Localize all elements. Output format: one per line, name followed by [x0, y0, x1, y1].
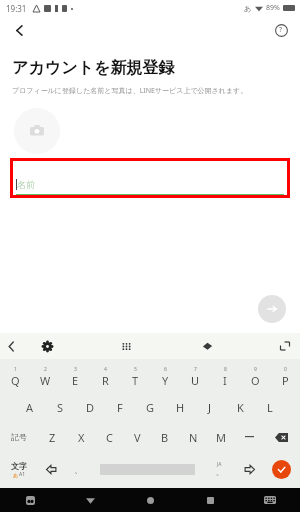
button[interactable]: 文字 — [0, 452, 38, 486]
staticText: J — [208, 400, 212, 415]
staticText: 1 — [14, 366, 17, 373]
staticText: あ — [13, 472, 19, 478]
staticText: 、 — [74, 464, 83, 475]
button[interactable]: D — [75, 392, 105, 422]
staticText: ー — [244, 430, 255, 444]
staticText: 。 — [216, 468, 223, 477]
button[interactable]: Back — [2, 337, 20, 355]
staticText: V — [134, 430, 141, 445]
staticText: N — [189, 430, 198, 445]
staticText: R — [102, 373, 109, 388]
button[interactable]: Assistant — [0, 488, 60, 512]
button[interactable]: Next — [258, 295, 286, 323]
staticText: ? — [279, 25, 283, 35]
staticText: 8 — [224, 366, 227, 373]
button[interactable]: 4 — [90, 362, 120, 392]
staticText: F — [117, 400, 123, 415]
button[interactable]: Settings — [38, 337, 56, 355]
button[interactable]: K — [225, 392, 255, 422]
staticText: W — [40, 373, 51, 388]
button[interactable]: Back — [4, 16, 34, 44]
button[interactable]: A — [15, 392, 45, 422]
staticText: JA — [217, 461, 222, 468]
button[interactable]: Back — [60, 488, 120, 512]
button[interactable]: Confirm — [263, 452, 300, 486]
staticText: 5 — [134, 366, 137, 373]
button[interactable]: Keyboard — [240, 488, 300, 512]
button[interactable]: 3 — [60, 362, 90, 392]
button[interactable]: ー — [235, 422, 263, 452]
button[interactable]: L — [255, 392, 285, 422]
button[interactable]: 0 — [270, 362, 300, 392]
button[interactable]: B — [151, 422, 179, 452]
staticText: 3 — [74, 366, 77, 373]
staticText: 記号 — [11, 432, 27, 442]
button[interactable]: Move left — [38, 452, 65, 486]
button[interactable]: Home — [120, 488, 180, 512]
staticText: あ — [244, 4, 252, 13]
button[interactable]: Backspace — [263, 422, 300, 452]
button[interactable]: 5 — [120, 362, 150, 392]
staticText: Q — [11, 373, 20, 388]
staticText: 文字 — [11, 461, 27, 471]
staticText: O — [251, 373, 260, 388]
staticText: Z — [49, 430, 56, 445]
staticText: P — [282, 373, 289, 388]
staticText: K — [237, 400, 244, 415]
staticText: 9 — [254, 366, 257, 373]
button[interactable]: 9 — [240, 362, 270, 392]
staticText: X — [78, 430, 85, 445]
staticText: S — [57, 400, 64, 415]
staticText: B — [161, 430, 169, 445]
button[interactable]: Help — [266, 16, 296, 44]
staticText: 名前 — [17, 179, 35, 190]
button[interactable]: Z — [38, 422, 67, 452]
button[interactable]: 名前 — [16, 161, 284, 195]
button[interactable]: Move right — [236, 452, 263, 486]
staticText: U — [191, 373, 200, 388]
staticText: 2 — [44, 366, 47, 373]
button[interactable]: 8 — [210, 362, 240, 392]
staticText: 0 — [284, 366, 287, 373]
staticText: 19:31 — [6, 3, 27, 14]
button[interactable]: Resize keyboard — [276, 334, 294, 358]
button[interactable]: X — [67, 422, 95, 452]
staticText: D — [86, 400, 95, 415]
staticText: G — [146, 400, 155, 415]
button[interactable]: N — [179, 422, 207, 452]
button[interactable]: Stickers — [195, 334, 219, 358]
staticText: プロフィールに登録した名前と写真は、LINEサービス上で公開されます。 — [12, 86, 248, 96]
button[interactable]: 1 — [0, 362, 30, 392]
staticText: A1 — [19, 471, 26, 478]
button[interactable]: F — [105, 392, 135, 422]
button[interactable]: 2 — [30, 362, 60, 392]
button[interactable]: V — [123, 422, 151, 452]
button[interactable]: G — [135, 392, 165, 422]
staticText: アカウントを新規登録 — [12, 58, 175, 78]
button[interactable]: Space — [92, 452, 202, 486]
button[interactable]: 、 — [65, 452, 92, 486]
staticText: 4 — [104, 366, 107, 373]
button[interactable]: J — [195, 392, 225, 422]
button[interactable]: 記号 — [0, 422, 38, 452]
staticText: C — [106, 430, 113, 445]
button[interactable]: Add profile photo — [14, 108, 60, 154]
staticText: 6 — [164, 366, 167, 373]
staticText: I — [223, 373, 227, 388]
button[interactable]: S — [45, 392, 75, 422]
staticText: T — [132, 373, 139, 388]
staticText: 7 — [194, 366, 197, 373]
staticText: E — [72, 373, 79, 388]
button[interactable]: Apps — [114, 334, 138, 358]
staticText: L — [267, 400, 273, 415]
staticText: A — [26, 400, 34, 415]
button[interactable]: JA — [202, 452, 236, 486]
button[interactable]: 6 — [150, 362, 180, 392]
staticText: M — [216, 430, 226, 445]
button[interactable]: Recents — [180, 488, 240, 512]
staticText: Y — [162, 373, 169, 388]
button[interactable]: H — [165, 392, 195, 422]
button[interactable]: C — [95, 422, 123, 452]
button[interactable]: 7 — [180, 362, 210, 392]
button[interactable]: M — [207, 422, 235, 452]
